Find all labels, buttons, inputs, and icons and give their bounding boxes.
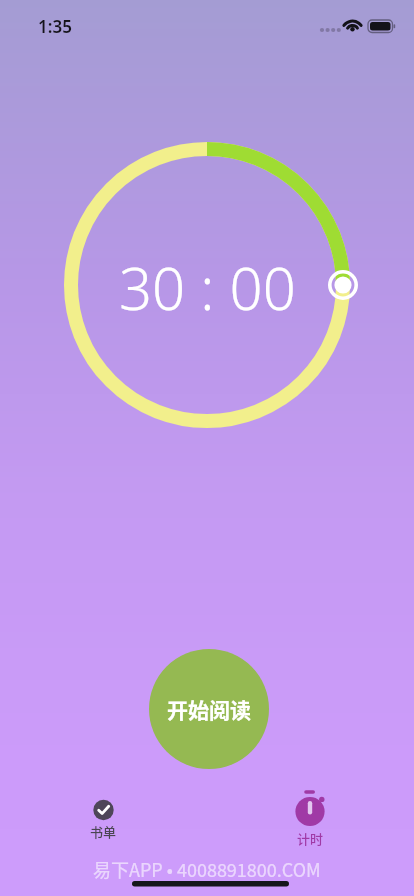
button[interactable]: 开始阅读 [149,649,269,769]
staticText: 易下APP • 4008891800.COM [93,856,321,882]
button[interactable]: 书单 [63,793,144,841]
staticText: 30 : 00 [119,248,296,324]
staticText: 1:35 [38,15,72,38]
staticText: 书单 [90,822,117,841]
button[interactable]: 计时 [270,793,351,848]
staticText: 开始阅读 [167,694,251,724]
staticText: 计时 [297,829,324,848]
